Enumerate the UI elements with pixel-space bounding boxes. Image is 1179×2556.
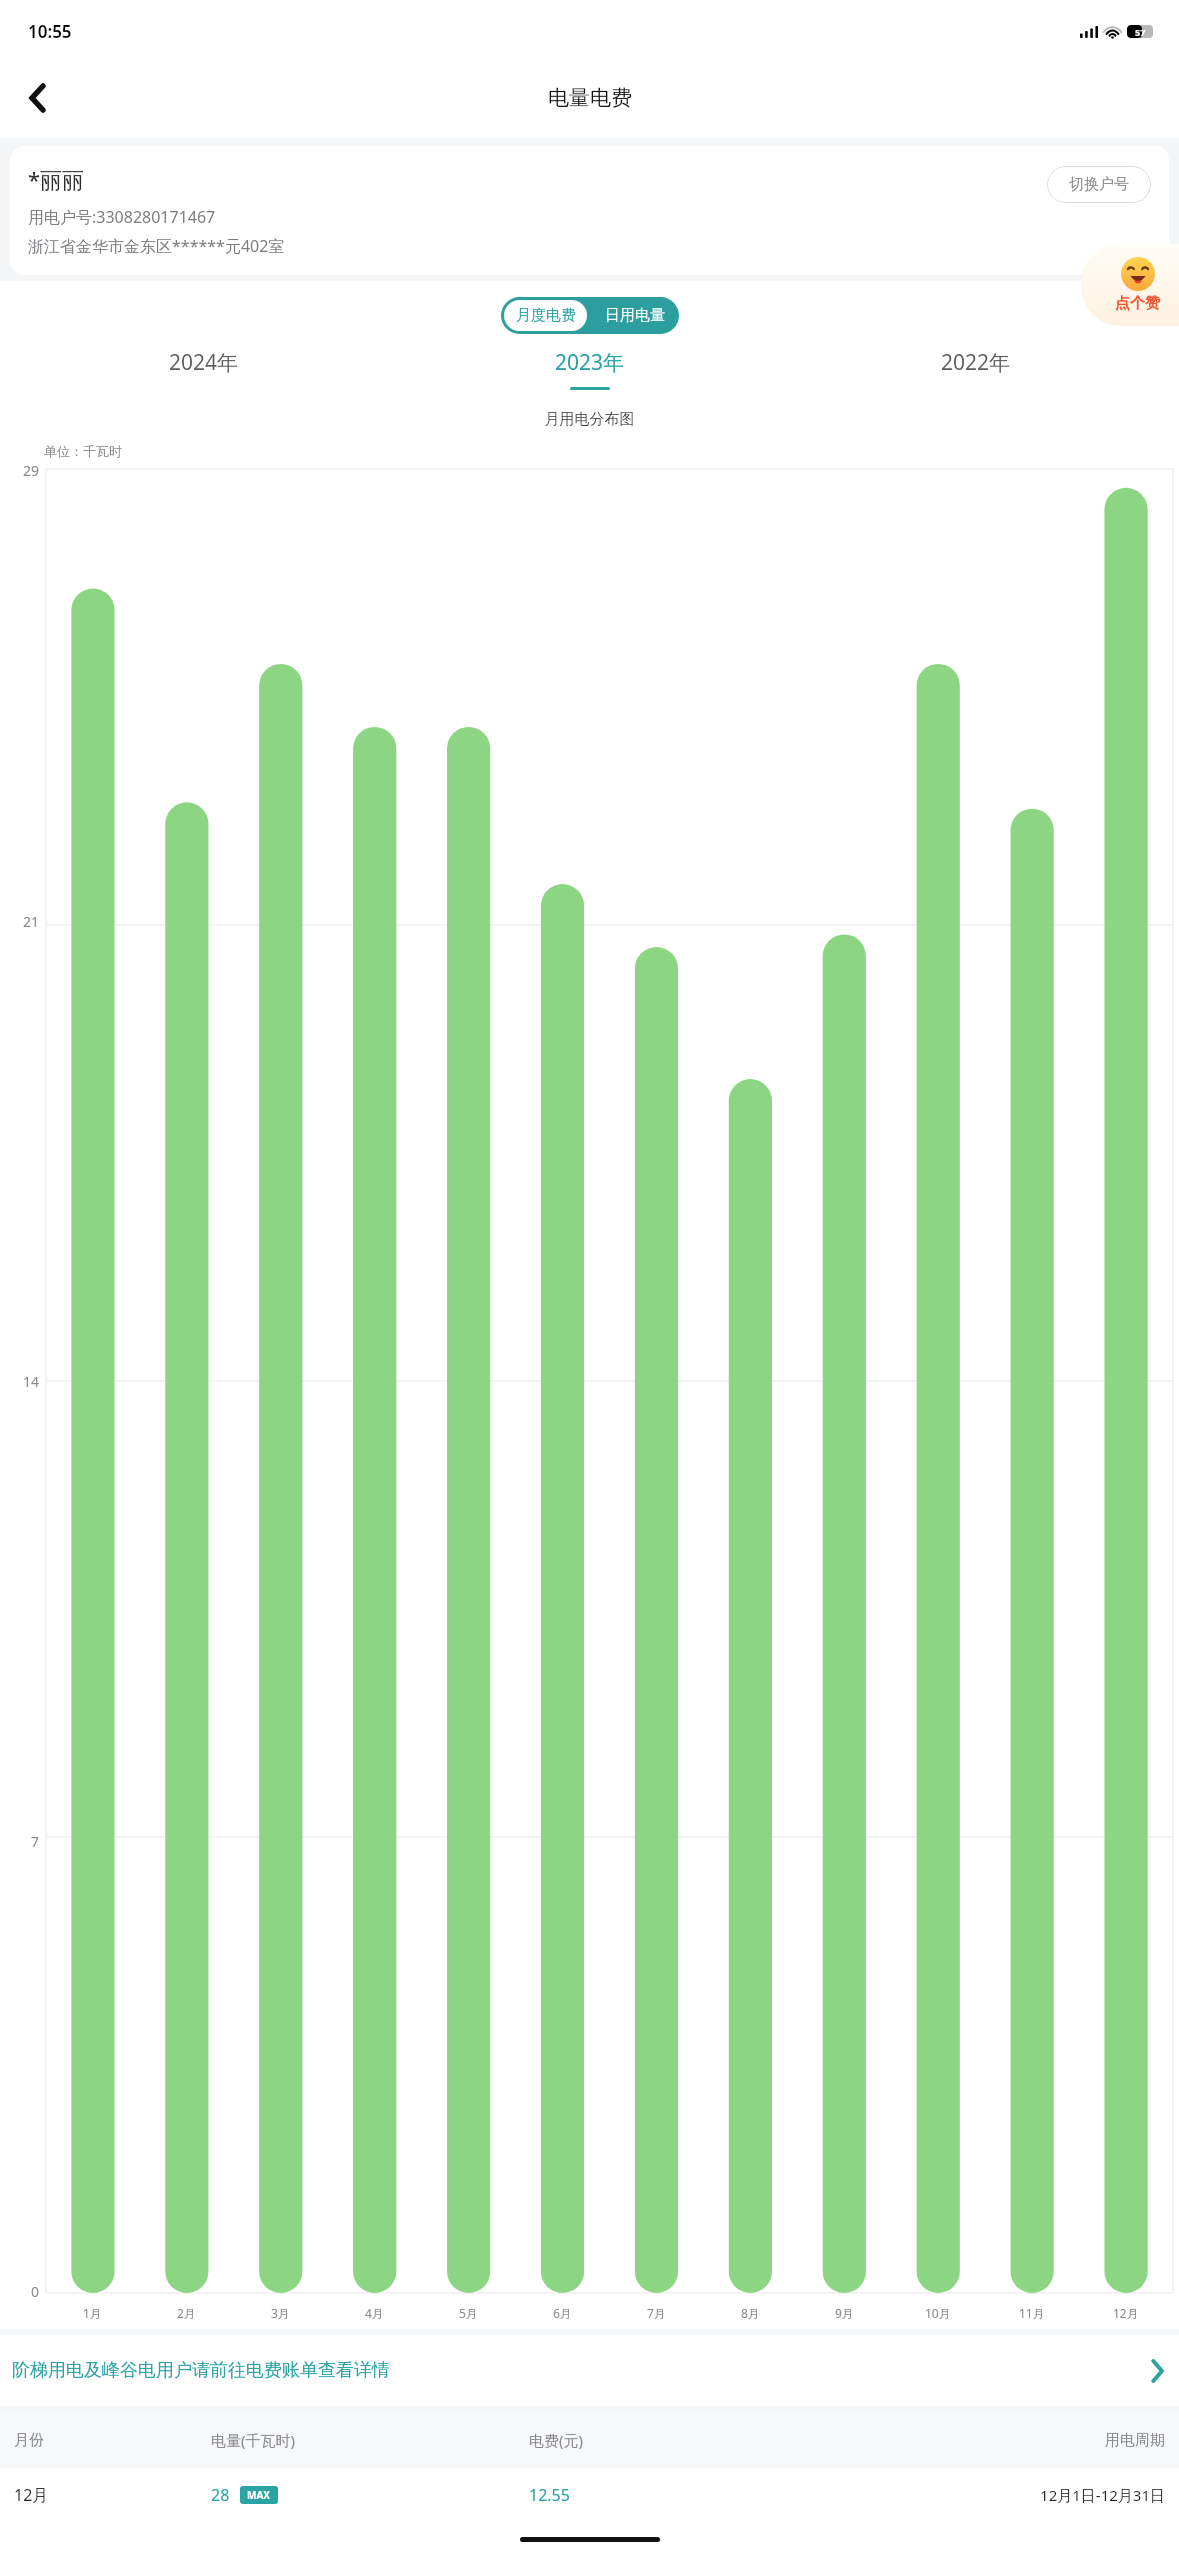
staticText: 12月 (1113, 2305, 1139, 2321)
button[interactable]: 2024年 (10, 348, 397, 390)
staticText: 月用电分布图 (0, 410, 1179, 429)
staticText: MAX (247, 2488, 271, 2502)
staticText: 4月 (365, 2305, 384, 2321)
staticText: 月度电费 (516, 306, 576, 325)
staticText: 电量(千瓦时) (211, 2430, 529, 2450)
button[interactable]: 月度电费 (504, 300, 587, 331)
button[interactable]: 点个赞 (1081, 244, 1179, 326)
staticText: 14 (23, 1372, 40, 1391)
staticText: 月份 (14, 2431, 211, 2450)
staticText: 9月 (835, 2305, 854, 2321)
button[interactable]: 日用电量 (590, 297, 679, 334)
staticText: 用电户号:3308280171467 (28, 206, 216, 228)
button[interactable]: 切换户号 (1047, 166, 1151, 203)
staticText: 8月 (741, 2305, 760, 2321)
staticText: 2024年 (169, 348, 239, 377)
staticText: 2月 (177, 2305, 196, 2321)
button[interactable]: *丽丽 (10, 146, 1169, 275)
button[interactable]: Back (10, 71, 64, 125)
staticText: *丽丽 (28, 164, 85, 194)
staticText: 2022年 (941, 348, 1011, 377)
staticText: 29 (23, 461, 40, 480)
staticText: 0 (31, 2282, 40, 2301)
staticText: 12.55 (529, 2484, 847, 2506)
staticText: 57 (1135, 26, 1146, 38)
staticText: 5月 (459, 2305, 478, 2321)
staticText: 7月 (647, 2305, 666, 2321)
button[interactable]: 12月 (0, 2468, 1179, 2522)
staticText: 切换户号 (1069, 175, 1129, 194)
staticText: 1月 (83, 2305, 102, 2321)
staticText: 3月 (271, 2305, 290, 2321)
staticText: 阶梯用电及峰谷电用户请前往电费账单查看详情 (12, 2359, 1152, 2382)
staticText: 2023年 (555, 348, 625, 377)
button[interactable]: 2022年 (783, 348, 1169, 390)
staticText: 10月 (925, 2305, 951, 2321)
button[interactable]: 2023年 (397, 348, 783, 390)
staticText: 浙江省金华市金东区******元402室 (28, 235, 285, 257)
staticText: 点个赞 (1115, 294, 1160, 313)
staticText: 电费(元) (529, 2430, 847, 2450)
staticText: 电量电费 (548, 85, 632, 111)
staticText: 12月 (14, 2484, 211, 2506)
staticText: 28 (211, 2484, 230, 2506)
staticText: 11月 (1019, 2305, 1045, 2321)
staticText: 7 (31, 1832, 40, 1851)
staticText: 用电周期 (847, 2431, 1165, 2450)
staticText: 21 (23, 912, 40, 931)
staticText: 6月 (553, 2305, 572, 2321)
staticText: 12月1日-12月31日 (847, 2485, 1165, 2505)
button[interactable]: 阶梯用电及峰谷电用户请前往电费账单查看详情 (0, 2335, 1179, 2406)
staticText: 单位：千瓦时 (44, 443, 122, 459)
staticText: 日用电量 (605, 306, 665, 325)
staticText: 10:55 (28, 20, 72, 43)
